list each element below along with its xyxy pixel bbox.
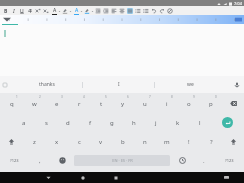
staticText: 3 [61,95,63,99]
button[interactable]: we [155,76,226,93]
button[interactable]: e [46,94,68,113]
staticText: x [55,138,59,146]
button[interactable]: Voice input [232,80,242,90]
staticText: I [13,8,15,15]
staticText: s [45,119,48,127]
button[interactable]: i [156,94,178,113]
staticText: 5 [105,95,107,99]
button[interactable]: c [68,132,90,151]
staticText: u [143,100,147,108]
button[interactable]: s [35,113,57,132]
button[interactable]: I [83,76,154,93]
button[interactable]: j [145,113,167,132]
staticText: w [32,100,37,108]
button[interactable]: p [200,94,222,113]
button[interactable]: l [189,113,211,132]
button[interactable]: Highlight [62,8,68,14]
staticText: 1 [16,95,18,99]
button[interactable]: ?123 [215,151,244,170]
button[interactable]: y [112,94,134,113]
staticText: b [121,138,125,146]
button[interactable]: n [134,132,156,151]
staticText: v [99,138,103,146]
staticText: f [89,119,92,127]
button[interactable]: z [23,132,46,151]
button[interactable]: Home [73,172,93,183]
button[interactable]: Shift [0,132,23,151]
button[interactable]: d [57,113,79,132]
button[interactable]: Back [38,172,59,183]
button[interactable]: v [90,132,112,151]
button[interactable]: Increase indent [103,8,109,14]
button[interactable]: g [101,113,123,132]
button[interactable]: Text highlight color [84,8,90,14]
staticText: 7 [149,95,151,99]
button[interactable]: Align justify [127,8,133,14]
button[interactable]: m [156,132,178,151]
button[interactable]: Recent apps [106,172,126,183]
staticText: o [187,100,191,108]
button[interactable]: Enter [211,113,244,132]
staticText: p [209,100,213,108]
staticText: 9 [193,95,195,99]
button[interactable]: T [26,7,34,15]
staticText: m [164,138,170,146]
staticText: 8 [171,95,173,99]
button[interactable]: A [72,7,80,15]
button[interactable]: t [90,94,112,113]
staticText: 7:04 [234,1,242,6]
button[interactable]: f [79,113,101,132]
button[interactable]: k [167,113,189,132]
button[interactable]: b [112,132,134,151]
button[interactable]: Undo [151,8,157,14]
button[interactable]: Emoji [51,151,73,170]
staticText: d [66,119,70,127]
staticText: q [10,100,14,108]
button[interactable]: B [2,7,10,15]
button[interactable]: Backspace [222,94,244,113]
button[interactable]: Superscript [35,8,41,14]
staticText: EN · ES · FR [112,158,133,163]
button[interactable]: Numbered list [143,8,149,14]
button[interactable]: EN · ES · FR [74,155,170,166]
button[interactable]: ? [200,132,222,151]
button[interactable]: ! [178,132,200,151]
button[interactable]: Subscript [43,8,49,14]
button[interactable]: x [46,132,68,151]
button[interactable]: w [23,94,46,113]
button[interactable]: Shift [222,132,244,151]
button[interactable]: Decrease indent [95,8,101,14]
button[interactable]: , [29,151,51,170]
staticText: B [4,8,8,15]
button[interactable]: h [123,113,145,132]
staticText: ?123 [10,158,19,163]
button[interactable]: u [134,94,156,113]
button[interactable]: ?123 [0,151,29,170]
staticText: . [203,157,205,165]
button[interactable]: A [50,7,58,15]
staticText: n [143,138,147,146]
staticText: T [29,8,32,15]
button[interactable]: q [0,94,23,113]
button[interactable]: Align left [111,8,117,14]
staticText: i [166,100,168,108]
button[interactable]: Bulleted list [135,8,141,14]
staticText: 0 [215,95,217,99]
button[interactable]: Clear formatting [167,8,173,14]
button[interactable]: Hide keyboard [215,172,237,183]
staticText: j [155,119,157,127]
staticText: ?123 [225,158,234,163]
button[interactable]: I [10,7,18,15]
staticText: thanks [39,81,55,88]
button[interactable]: o [178,94,200,113]
button[interactable]: Align center [119,8,125,14]
staticText: , [39,157,41,165]
button[interactable]: a [12,113,35,132]
button[interactable]: r [68,94,90,113]
button[interactable]: Redo [159,8,165,14]
button[interactable]: thanks [12,76,82,93]
button[interactable]: U [18,7,26,15]
button[interactable]: Settings [171,151,193,170]
button[interactable]: Clipboard [1,81,9,89]
